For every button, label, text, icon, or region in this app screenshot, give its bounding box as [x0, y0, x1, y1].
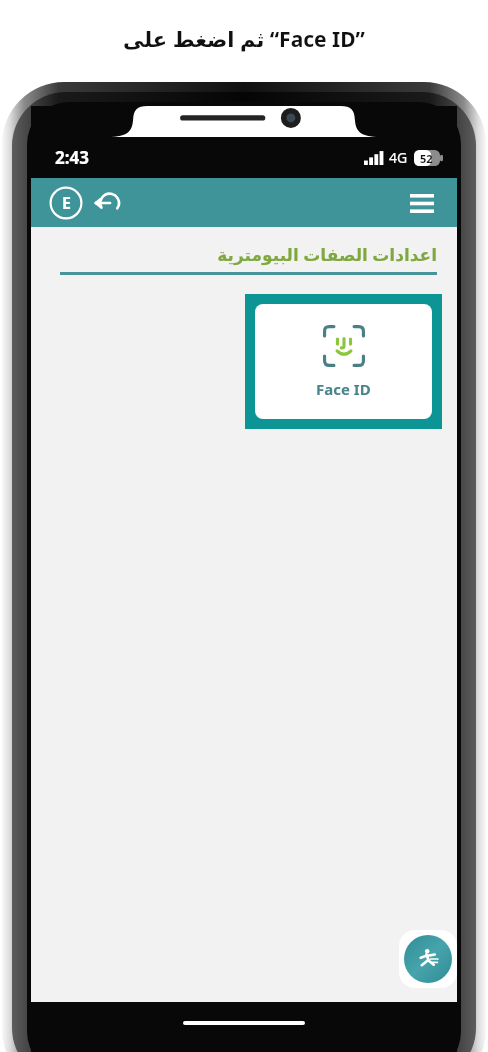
staticText: 52 — [420, 151, 433, 166]
button[interactable]: Menu — [405, 186, 439, 220]
staticText: ثم اضغط على “Face ID” — [123, 25, 365, 54]
staticText: Face ID — [316, 379, 371, 399]
staticText: اعدادات الصفات البيومترية — [217, 243, 437, 266]
staticText: E — [62, 192, 71, 214]
staticText: 2:43 — [55, 146, 89, 169]
button[interactable]: Logout — [90, 186, 124, 220]
staticText: 4G — [389, 148, 408, 167]
button[interactable]: Face ID — [245, 294, 442, 429]
button[interactable]: Accessibility — [399, 930, 457, 988]
button[interactable]: Home — [49, 186, 83, 220]
